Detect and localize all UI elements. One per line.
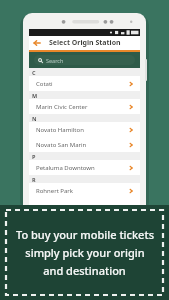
- staticText: Cotati: [36, 80, 128, 88]
- button[interactable]: Search: [34, 55, 135, 65]
- button[interactable]: Cotati: [29, 76, 140, 91]
- button[interactable]: Petaluma Downtown: [29, 160, 140, 175]
- staticText: Rohnert Park: [36, 187, 128, 195]
- staticText: Novato San Marin: [36, 141, 128, 149]
- staticText: M: [32, 92, 38, 99]
- staticText: simply pick your origin: [25, 245, 145, 260]
- staticText: C: [32, 69, 36, 76]
- staticText: and destination: [43, 263, 126, 278]
- staticText: Petaluma Downtown: [36, 164, 128, 172]
- staticText: Select Origin Station: [49, 38, 121, 48]
- staticText: R: [32, 176, 36, 183]
- staticText: N: [32, 115, 37, 122]
- button[interactable]: Back: [29, 36, 45, 50]
- button[interactable]: Rohnert Park: [29, 183, 140, 198]
- staticText: P: [32, 153, 36, 160]
- button[interactable]: Novato Hamilton: [29, 122, 140, 137]
- staticText: Novato Hamilton: [36, 126, 128, 134]
- staticText: Marin Civic Center: [36, 103, 128, 111]
- staticText: To buy your mobile tickets: [16, 227, 154, 242]
- button[interactable]: Novato San Marin: [29, 137, 140, 152]
- staticText: Search: [46, 57, 64, 64]
- button[interactable]: Marin Civic Center: [29, 99, 140, 114]
